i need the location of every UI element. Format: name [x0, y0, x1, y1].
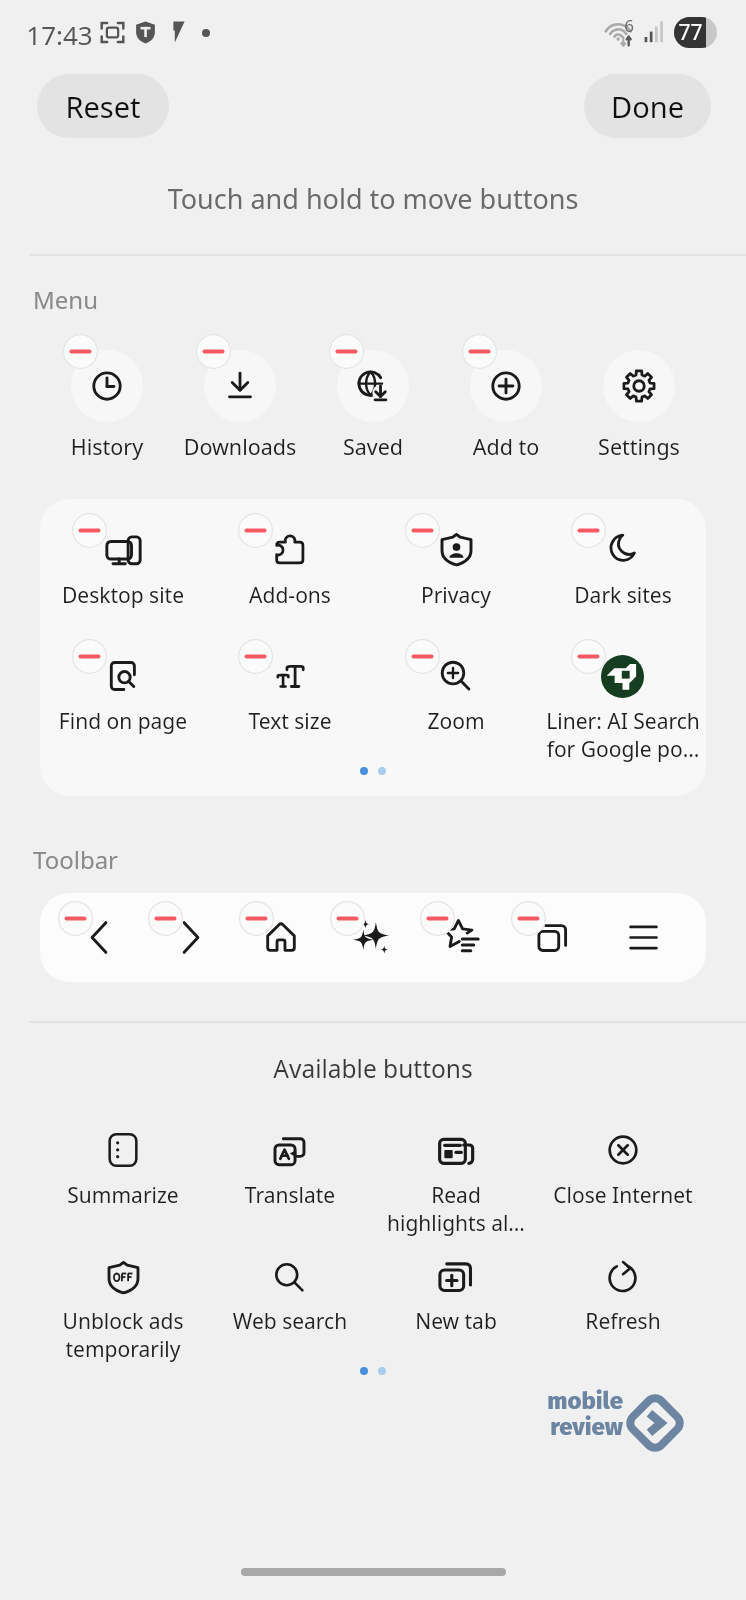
- staticText: Menu: [33, 283, 98, 316]
- button[interactable]: Back: [55, 893, 145, 982]
- button[interactable]: Web search: [210, 1248, 370, 1358]
- staticText: Toolbar: [33, 843, 119, 876]
- staticText: Liner: AI Search for Google po…: [540, 707, 706, 763]
- button[interactable]: History: [59, 334, 155, 456]
- staticText: Available buttons: [0, 1052, 746, 1085]
- staticText: History: [41, 432, 173, 461]
- button[interactable]: Text size: [210, 642, 370, 752]
- staticText: Unblock ads temporarily: [40, 1307, 206, 1363]
- button[interactable]: Liner: AI Search for Google po…: [543, 642, 703, 752]
- button[interactable]: Translate: [210, 1120, 370, 1230]
- button[interactable]: Unblock ads temporarily: [43, 1248, 203, 1358]
- button[interactable]: Read highlights aloud: [376, 1120, 536, 1230]
- staticText: Summarize: [40, 1181, 206, 1210]
- button[interactable]: Summarize: [43, 1120, 203, 1230]
- staticText: Zoom: [373, 707, 539, 736]
- button[interactable]: Saved: [325, 334, 421, 456]
- staticText: 17:43: [26, 17, 93, 52]
- staticText: Reset: [65, 87, 141, 126]
- staticText: Desktop site: [40, 581, 206, 610]
- staticText: Touch and hold to move buttons: [0, 180, 746, 217]
- staticText: New tab: [373, 1307, 539, 1336]
- staticText: Saved: [307, 432, 439, 461]
- staticText: Privacy: [373, 581, 539, 610]
- staticText: Done: [611, 87, 684, 126]
- button[interactable]: Find on page: [43, 642, 203, 752]
- staticText: Text size: [207, 707, 373, 736]
- staticText: Refresh: [540, 1307, 706, 1336]
- button[interactable]: Privacy: [376, 515, 536, 620]
- button[interactable]: Add-ons: [210, 515, 370, 620]
- button[interactable]: More options: [599, 893, 689, 982]
- staticText: 77: [678, 18, 703, 47]
- button[interactable]: Settings: [591, 334, 687, 456]
- button[interactable]: Home: [236, 893, 326, 982]
- staticText: Find on page: [40, 707, 206, 736]
- button[interactable]: Downloads: [192, 334, 288, 456]
- button[interactable]: Add to: [458, 334, 554, 456]
- staticText: Translate: [207, 1181, 373, 1210]
- staticText: Read highlights al…: [373, 1181, 539, 1237]
- staticText: Add-ons: [207, 581, 373, 610]
- button[interactable]: New tab: [376, 1248, 536, 1358]
- staticText: Web search: [207, 1307, 373, 1336]
- staticText: Downloads: [174, 432, 306, 461]
- button[interactable]: AI assistant: [327, 893, 417, 982]
- button[interactable]: Desktop site: [43, 515, 203, 620]
- button[interactable]: Zoom: [376, 642, 536, 752]
- button[interactable]: Done: [584, 74, 711, 138]
- staticText: Close Internet: [540, 1181, 706, 1210]
- staticText: mobile: [541, 1387, 623, 1416]
- button[interactable]: Bookmarks: [417, 893, 507, 982]
- button[interactable]: Dark sites: [543, 515, 703, 620]
- staticText: Add to: [440, 432, 572, 461]
- button[interactable]: Reset: [37, 74, 169, 138]
- button[interactable]: Forward: [145, 893, 235, 982]
- button[interactable]: Close Internet: [543, 1120, 703, 1230]
- button[interactable]: Refresh: [543, 1248, 703, 1358]
- staticText: 6: [624, 14, 634, 37]
- staticText: Dark sites: [540, 581, 706, 610]
- staticText: review: [541, 1413, 623, 1442]
- staticText: Settings: [573, 432, 705, 461]
- button[interactable]: Tabs: [508, 893, 598, 982]
